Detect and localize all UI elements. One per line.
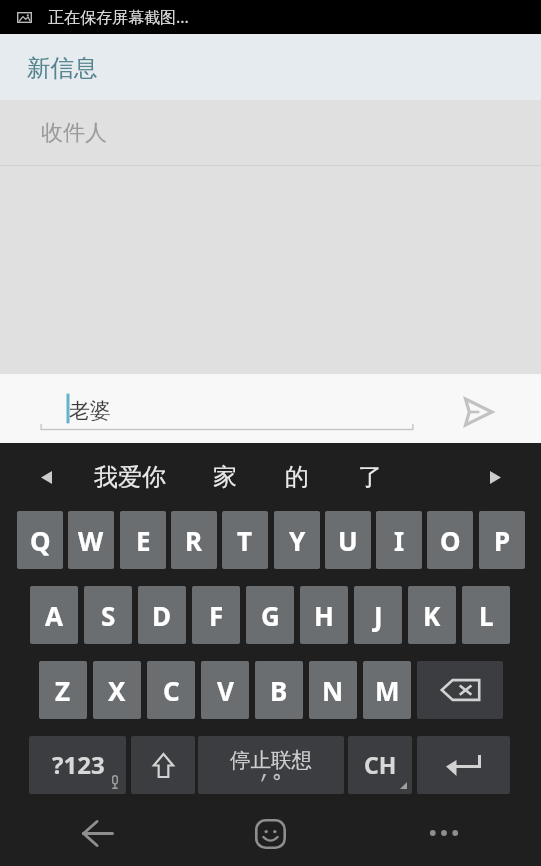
staticText: K: [423, 598, 441, 633]
staticText: 收件人: [41, 119, 107, 147]
staticText: N: [322, 673, 344, 708]
button[interactable]: 我爱你: [86, 443, 174, 511]
button[interactable]: 家: [205, 443, 245, 511]
staticText: X: [108, 673, 126, 708]
staticText: 老婆: [69, 398, 111, 424]
button[interactable]: X: [93, 661, 141, 719]
button[interactable]: Back: [70, 802, 126, 864]
button[interactable]: Q: [17, 511, 63, 569]
button[interactable]: 的: [277, 443, 317, 511]
button[interactable]: S: [84, 586, 132, 644]
button[interactable]: Z: [39, 661, 87, 719]
button[interactable]: Backspace: [417, 661, 503, 719]
staticText: T: [237, 523, 253, 558]
staticText: C: [163, 673, 180, 708]
staticText: Q: [30, 523, 51, 558]
staticText: ?123: [52, 748, 105, 781]
button[interactable]: A: [30, 586, 78, 644]
staticText: O: [440, 523, 461, 558]
button[interactable]: W: [68, 511, 114, 569]
staticText: P: [494, 523, 511, 558]
button[interactable]: K: [408, 586, 456, 644]
staticText: 停止联想: [230, 747, 312, 773]
button[interactable]: N: [309, 661, 357, 719]
staticText: D: [152, 598, 172, 633]
button[interactable]: Shift: [131, 736, 195, 794]
button[interactable]: U: [325, 511, 371, 569]
button[interactable]: O: [427, 511, 473, 569]
staticText: Y: [289, 523, 306, 558]
button[interactable]: P: [479, 511, 525, 569]
staticText: Z: [55, 673, 71, 708]
button[interactable]: F: [192, 586, 240, 644]
staticText: V: [217, 673, 234, 708]
button[interactable]: T: [222, 511, 268, 569]
button[interactable]: E: [120, 511, 166, 569]
button[interactable]: J: [354, 586, 402, 644]
button[interactable]: Y: [274, 511, 320, 569]
button[interactable]: Symbols: [29, 736, 126, 794]
staticText: 家: [213, 462, 237, 492]
staticText: 我爱你: [94, 462, 166, 492]
staticText: J: [374, 598, 383, 633]
button[interactable]: Home: [242, 803, 298, 865]
button[interactable]: M: [363, 661, 411, 719]
button[interactable]: 收件人: [0, 100, 541, 166]
button[interactable]: Enter: [417, 736, 510, 794]
staticText: L: [479, 598, 494, 633]
button[interactable]: Previous suggestions: [24, 443, 68, 511]
button[interactable]: G: [246, 586, 294, 644]
button[interactable]: L: [462, 586, 510, 644]
staticText: B: [270, 673, 288, 708]
button[interactable]: I: [376, 511, 422, 569]
staticText: U: [338, 523, 358, 558]
button[interactable]: C: [147, 661, 195, 719]
staticText: F: [209, 598, 224, 633]
staticText: E: [136, 523, 151, 558]
staticText: A: [45, 598, 63, 633]
staticText: I: [394, 523, 405, 558]
staticText: M: [375, 673, 400, 708]
staticText: 新信息: [27, 53, 98, 83]
staticText: W: [78, 523, 104, 558]
staticText: S: [101, 598, 116, 633]
staticText: CH: [364, 749, 397, 780]
button[interactable]: D: [138, 586, 186, 644]
staticText: 正在保存屏幕截图...: [48, 6, 189, 28]
button[interactable]: Language: [348, 736, 412, 794]
button[interactable]: B: [255, 661, 303, 719]
staticText: R: [185, 523, 203, 558]
staticText: 了: [358, 462, 382, 492]
button[interactable]: V: [201, 661, 249, 719]
button[interactable]: Space: [198, 736, 344, 794]
staticText: G: [261, 598, 280, 633]
button[interactable]: R: [171, 511, 217, 569]
button[interactable]: More options: [416, 802, 472, 864]
button[interactable]: H: [300, 586, 348, 644]
button[interactable]: 了: [350, 443, 390, 511]
staticText: H: [314, 598, 334, 633]
button[interactable]: Send: [456, 389, 501, 434]
staticText: 的: [285, 462, 309, 492]
button[interactable]: More suggestions: [473, 443, 517, 511]
